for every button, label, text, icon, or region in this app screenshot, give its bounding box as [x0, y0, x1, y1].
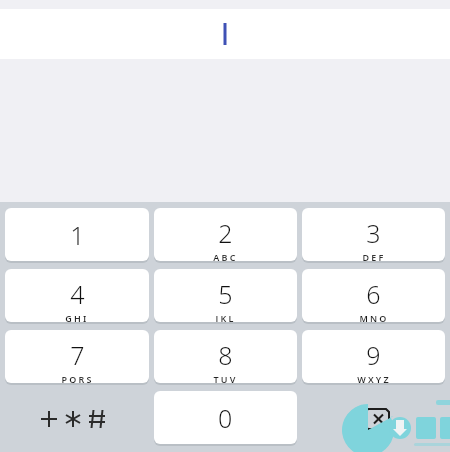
- staticText: 7: [70, 338, 85, 372]
- button[interactable]: Delete: [302, 391, 445, 446]
- button[interactable]: 2: [154, 208, 297, 261]
- button[interactable]: 1: [5, 208, 149, 261]
- button[interactable]: 9: [302, 330, 445, 383]
- staticText: 5: [218, 277, 233, 311]
- staticText: 6: [366, 277, 381, 311]
- staticText: 1: [70, 218, 85, 252]
- button[interactable]: 4: [5, 269, 149, 322]
- staticText: 4: [70, 277, 85, 311]
- button[interactable]: 0: [154, 391, 297, 444]
- button[interactable]: [0, 9, 450, 59]
- staticText: DEF: [362, 251, 386, 261]
- staticText: PQRS: [61, 373, 94, 383]
- staticText: JKL: [215, 312, 236, 322]
- staticText: 8: [218, 338, 233, 372]
- staticText: 0: [218, 401, 233, 435]
- button[interactable]: 5: [154, 269, 297, 322]
- staticText: GHI: [65, 312, 89, 322]
- staticText: TUV: [213, 373, 238, 383]
- staticText: 3: [366, 216, 381, 250]
- button[interactable]: Plus star hash: [5, 391, 149, 446]
- staticText: MNO: [359, 312, 389, 322]
- button[interactable]: 3: [302, 208, 445, 261]
- button[interactable]: 8: [154, 330, 297, 383]
- button[interactable]: 7: [5, 330, 149, 383]
- staticText: ABC: [213, 251, 238, 261]
- button[interactable]: 6: [302, 269, 445, 322]
- staticText: 2: [218, 216, 233, 250]
- staticText: WXYZ: [357, 373, 391, 383]
- staticText: 9: [366, 338, 381, 372]
